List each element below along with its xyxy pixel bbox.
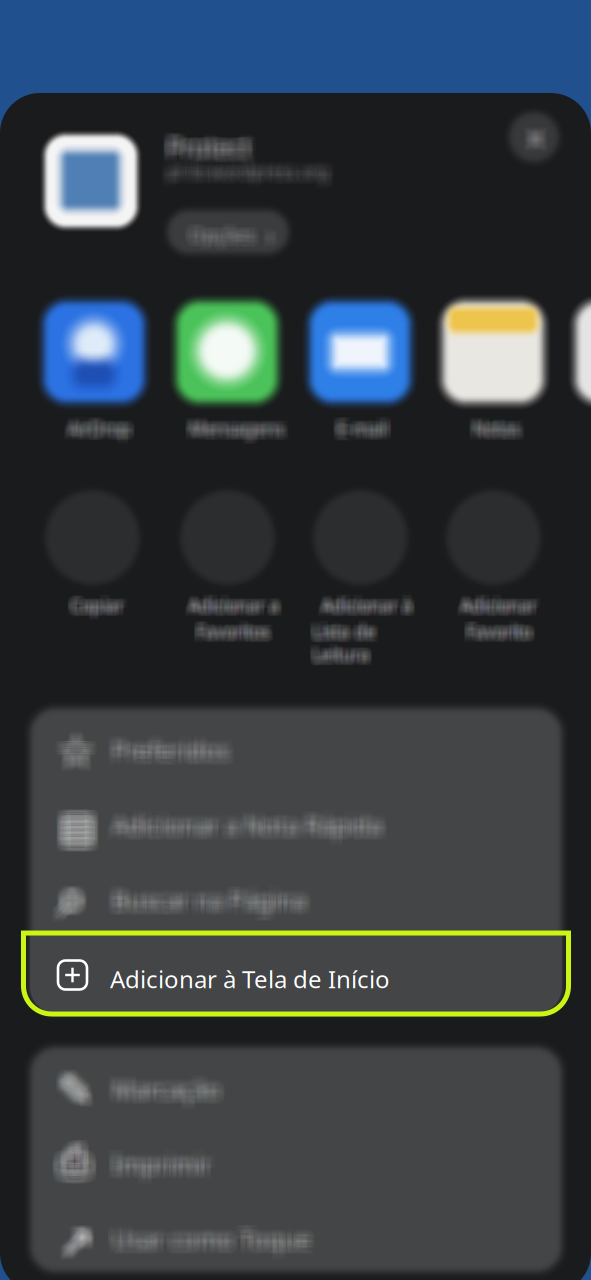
staticText: ▤ (58, 806, 95, 850)
button[interactable]: Adicionar a Nota Rápida (30, 783, 562, 858)
staticText: Protect (166, 125, 250, 159)
staticText: Lista de Leitura (312, 620, 375, 666)
staticText: Opções (188, 223, 254, 248)
staticText: ▤ (63, 809, 100, 852)
staticText: Copiar (72, 593, 125, 616)
staticText: › (266, 216, 273, 244)
staticText: Adicionar à (319, 593, 410, 616)
staticText: Adicionar a Nota Rápida (118, 814, 388, 846)
staticText: Adicionar a Nota Rápida (108, 814, 378, 846)
staticText: Protect (173, 135, 257, 168)
staticText: Buscar na Página (114, 886, 308, 918)
staticText: Opções (189, 226, 255, 251)
staticText: Buscar na Página (107, 882, 301, 913)
staticText: ✎ (52, 1073, 87, 1120)
button[interactable]: Marcação (30, 1047, 562, 1122)
staticText: ↗ (55, 1219, 90, 1266)
button[interactable]: Adicionar Favorito (446, 490, 541, 660)
staticText: Buscar na Página (114, 885, 308, 917)
staticText: ✕ (520, 130, 541, 159)
staticText: ↗ (63, 1219, 98, 1266)
staticText: Mensagens (193, 422, 288, 445)
staticText: Lista de Leitura (312, 619, 375, 665)
staticText: Copiar (71, 590, 124, 613)
staticText: Buscar na Página (117, 890, 311, 922)
staticText: ▤ (60, 806, 97, 850)
button[interactable]: Adicionar à Tela de Início (30, 933, 562, 1013)
staticText: Imprimir (112, 1152, 211, 1183)
button[interactable]: Buscar na Página (30, 858, 562, 933)
button[interactable]: Fechar (509, 112, 559, 162)
staticText: ↗ (63, 1220, 98, 1267)
staticText: AirDrop (70, 415, 133, 438)
button[interactable]: Imprimir (30, 1122, 562, 1197)
staticText: Protect (165, 130, 249, 164)
staticText: Mensagens (185, 413, 280, 436)
staticText: Favorito (470, 623, 535, 646)
staticText: ▤ (59, 809, 96, 852)
staticText: Adicionar (460, 593, 536, 616)
staticText: ✎ (54, 1062, 89, 1109)
staticText: › (262, 222, 269, 250)
button[interactable]: Copiar (45, 490, 140, 660)
staticText: ↗ (64, 1219, 99, 1266)
staticText: ⌕ (56, 875, 86, 927)
staticText: Notas (476, 418, 523, 441)
button[interactable]: Adicionar a Favoritos (180, 490, 275, 660)
staticText: Lista de Leitura (314, 617, 377, 663)
staticText: Copiar (69, 596, 122, 619)
staticText: ↗ (63, 1218, 98, 1265)
staticText: Imprimir (106, 1142, 205, 1174)
button[interactable]: Notas (443, 302, 543, 447)
staticText: Adicionar à (320, 592, 411, 615)
staticText: Usar como Toque (113, 1223, 312, 1255)
staticText: pt-br.wordpress.org (163, 161, 325, 184)
button[interactable]: Usar como Toque (30, 1197, 562, 1272)
staticText: Favorito (466, 621, 531, 644)
staticText: ☆ (53, 722, 91, 771)
staticText: Preferidos (116, 736, 233, 768)
staticText: ▤ (53, 806, 90, 850)
staticText: Marcação (114, 1073, 223, 1105)
staticText: Buscar na Página (116, 878, 310, 910)
button[interactable]: Preferidos (30, 708, 562, 783)
staticText: Preferidos (114, 728, 231, 760)
staticText: Preferidos (107, 739, 224, 771)
staticText: Adicionar a (186, 595, 277, 618)
button[interactable]: Adicionar à Lista de Leitura (313, 490, 408, 660)
button[interactable]: Opções (167, 210, 289, 254)
staticText: Buscar na Página (107, 888, 301, 919)
staticText: Marcação (111, 1067, 220, 1099)
staticText: ✕ (527, 126, 548, 155)
staticText: ⌕ (52, 874, 82, 926)
staticText: Favorito (464, 620, 529, 643)
button[interactable]: E-mail (310, 302, 410, 447)
staticText: Usar como Toque (108, 1221, 307, 1252)
staticText: Favoritos (192, 622, 265, 645)
staticText: ▤ (65, 801, 102, 845)
staticText: ▤ (57, 807, 94, 851)
staticText: ✎ (64, 1067, 99, 1114)
button[interactable]: Mensagens (177, 302, 277, 447)
staticText: AirDrop (73, 420, 136, 443)
staticText: Adicionar (463, 590, 539, 613)
staticText: ↗ (65, 1213, 100, 1260)
staticText: Adicionar a (187, 592, 278, 615)
staticText: ▤ (63, 806, 100, 850)
staticText: Usar como Toque (108, 1223, 307, 1255)
staticText: Opções (185, 221, 251, 246)
staticText: Favoritos (198, 618, 271, 641)
staticText: Adicionar (460, 590, 536, 613)
staticText: › (267, 223, 274, 252)
staticText: › (269, 223, 276, 252)
staticText: Adicionar a (190, 594, 281, 617)
staticText: Usar como Toque (117, 1219, 316, 1251)
staticText: Preferidos (118, 733, 235, 765)
staticText: Imprimir (106, 1144, 205, 1176)
staticText: Adicionar a Nota Rápida (114, 809, 384, 841)
button[interactable]: Mais (576, 302, 591, 447)
button[interactable]: AirDrop (44, 302, 144, 447)
staticText: ⎙ (64, 1138, 97, 1178)
staticText: ✕ (525, 127, 546, 156)
staticText: ⌕ (61, 878, 91, 930)
